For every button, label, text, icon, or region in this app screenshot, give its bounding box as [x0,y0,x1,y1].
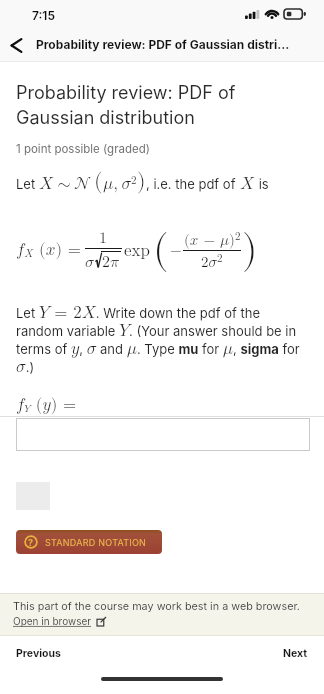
staticText: Let 𝑌 = 2𝑋. Write down the pdf of the ra… [16,304,306,375]
button[interactable]: Open in browser [13,615,106,627]
staticText: ∼ [54,175,74,192]
staticText: exp [124,242,150,259]
staticText: , i.e. the pdf of [146,176,240,192]
staticText: 𝜎 [85,254,95,270]
staticText: Let [16,176,39,192]
staticText: is [255,176,269,192]
staticText: 𝑋 [39,175,54,192]
staticText: 𝑓𝑌 (𝑦) = [16,396,82,414]
button[interactable]: Previous [0,636,110,670]
staticText: 𝒩 [74,175,92,192]
staticText: − [170,243,182,258]
staticText: ) [137,170,146,192]
staticText: 𝜇, 𝜎2 [103,175,137,192]
staticText: Open in browser [13,615,92,627]
button[interactable] [16,418,310,451]
staticText: This part of the course may work best in… [13,600,300,613]
button[interactable]: Next [234,636,324,670]
staticText: STANDARD NOTATION [45,537,147,548]
button[interactable]: Back [0,29,32,61]
staticText: Next [283,647,308,660]
staticText: Probability review: PDF of Gaussian dist… [36,37,290,52]
staticText: 2𝜋 [102,254,120,270]
staticText: 1 point possible (graded) [16,142,150,156]
button[interactable]: ? [16,530,162,554]
staticText: 𝑓𝑋 (𝑥) = [16,241,81,259]
staticText: ? [28,537,34,548]
staticText: ( [153,230,169,270]
staticText: ( [94,170,103,192]
staticText: 1 [99,230,108,246]
staticText: 7:15 [32,8,55,23]
staticText: Previous [16,647,61,660]
staticText: Probability review: PDF of Gaussian dist… [16,82,244,128]
staticText: 𝑋 [240,175,255,192]
staticText: ) [242,230,258,270]
staticText: 2𝜎2 [201,253,223,270]
staticText: (𝑥 − 𝜇)2 [184,231,241,248]
